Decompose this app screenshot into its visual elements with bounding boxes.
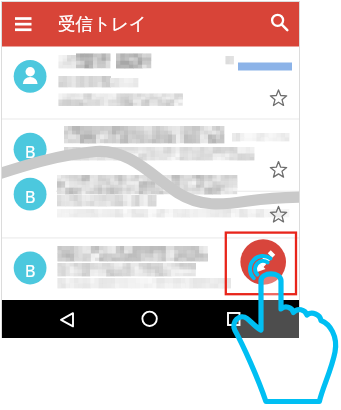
staticText: B	[25, 260, 36, 282]
staticText: B	[25, 141, 36, 163]
staticText: B	[25, 186, 36, 208]
staticText: 受信トレイ	[58, 13, 147, 35]
